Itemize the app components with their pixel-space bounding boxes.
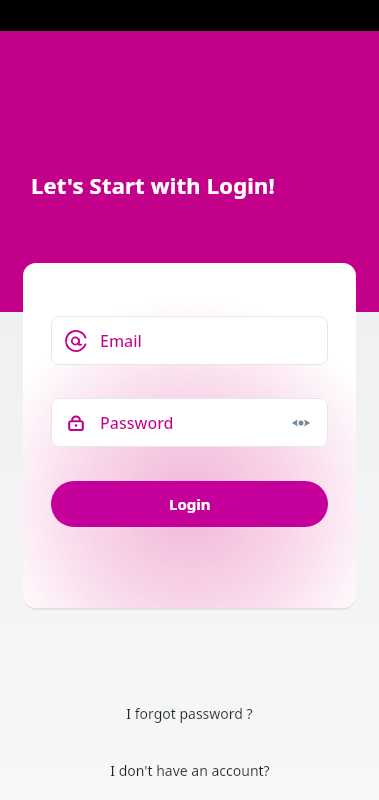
button[interactable]: Show password	[288, 410, 314, 436]
staticText: I forgot password ?	[126, 704, 253, 723]
button[interactable]: Password	[51, 398, 328, 447]
button[interactable]: Email	[51, 316, 328, 365]
button[interactable]: I forgot password ?	[116, 700, 263, 727]
staticText: I don't have an account?	[110, 761, 270, 780]
staticText: Password	[100, 412, 174, 434]
staticText: Let's Start with Login!	[31, 170, 275, 200]
button[interactable]: Login	[51, 481, 328, 527]
staticText: Email	[100, 330, 142, 352]
button[interactable]: I don't have an account?	[100, 757, 280, 784]
staticText: Login	[169, 494, 211, 514]
